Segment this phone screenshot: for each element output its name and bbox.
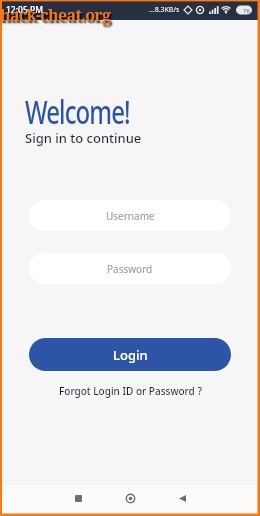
button[interactable] [167, 485, 197, 511]
staticText: Sign in to continue [25, 129, 142, 147]
staticText: Password [107, 262, 153, 276]
button[interactable]: Username [29, 200, 231, 231]
staticText: ...8.3KB/s [149, 5, 180, 15]
staticText: Forgot Login ID or Password ? [59, 384, 202, 398]
staticText: Welcome! [25, 89, 130, 134]
staticText: 76 [243, 7, 250, 15]
button[interactable]: Login [29, 338, 231, 371]
staticText: hack-cheat.org [0, 4, 111, 26]
button[interactable] [63, 485, 93, 511]
staticText: Login [113, 346, 148, 364]
button[interactable]: Forgot Login ID or Password ? [59, 384, 202, 398]
button[interactable] [115, 485, 145, 511]
staticText: Username [106, 209, 155, 223]
button[interactable]: Password [29, 253, 231, 284]
staticText: 12:05 PM [6, 4, 43, 16]
